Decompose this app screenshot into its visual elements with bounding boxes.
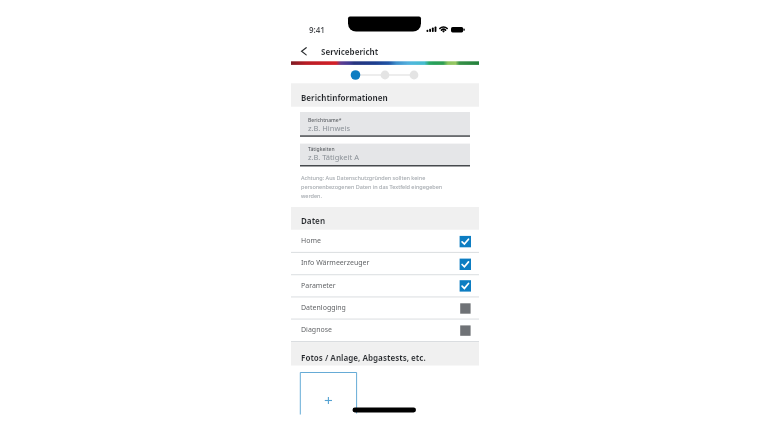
staticText: Parameter — [301, 281, 336, 291]
staticText: Berichtname* — [308, 117, 342, 124]
button[interactable] — [291, 274, 479, 296]
staticText: Daten — [301, 215, 326, 226]
staticText: Servicebericht — [321, 46, 379, 57]
button[interactable] — [300, 112, 470, 137]
staticText: Home — [301, 236, 321, 246]
staticText: Berichtinformationen — [301, 92, 388, 103]
button[interactable] — [291, 319, 479, 341]
staticText: Tätigkeiten — [308, 146, 335, 153]
button[interactable] — [300, 143, 470, 166]
staticText: 9:41 — [309, 24, 325, 35]
staticText: Datenlogging — [301, 303, 346, 313]
staticText: Achtung: Aus Datenschutzgründen sollten … — [301, 174, 443, 200]
button[interactable] — [291, 252, 479, 274]
staticText: Diagnose — [301, 325, 333, 335]
button[interactable] — [300, 372, 357, 415]
button[interactable] — [291, 297, 479, 319]
staticText: Info Wärmeerzeuger — [301, 258, 370, 268]
staticText: Fotos / Anlage, Abgastests, etc. — [301, 352, 426, 363]
button[interactable] — [297, 43, 313, 59]
staticText: z.B. Hinweis — [308, 123, 351, 133]
staticText: z.B. Tätigkeit A — [308, 152, 359, 162]
button[interactable] — [291, 230, 479, 252]
